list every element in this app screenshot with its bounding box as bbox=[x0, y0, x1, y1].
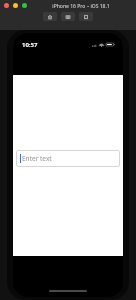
staticText: 10:57 bbox=[22, 41, 38, 49]
staticText: iPhone 16 Pro – iOS 18.1 bbox=[52, 3, 110, 10]
button[interactable]: Minimize bbox=[13, 3, 18, 8]
button[interactable]: Zoom bbox=[22, 3, 27, 8]
button[interactable]: Enter text bbox=[16, 150, 120, 167]
button[interactable]: Screenshot bbox=[61, 12, 75, 21]
staticText: Enter text bbox=[22, 154, 52, 163]
button[interactable]: Home bbox=[43, 12, 57, 21]
button[interactable]: Record bbox=[79, 12, 93, 21]
button[interactable]: Close bbox=[4, 3, 9, 8]
